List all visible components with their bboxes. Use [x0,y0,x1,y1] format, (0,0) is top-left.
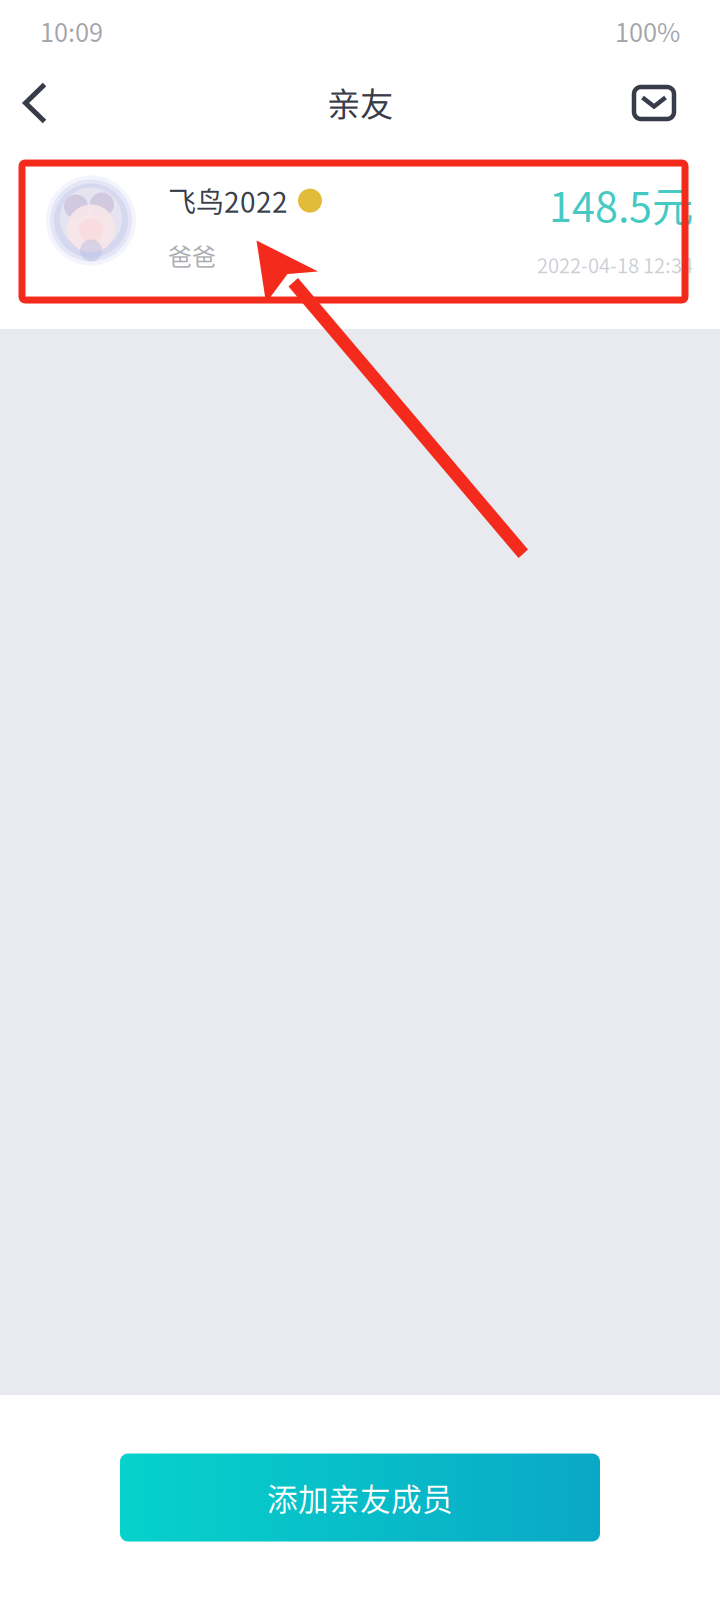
staticText: 10:09 [40,13,103,49]
button[interactable]: 添加亲友成员 [120,1453,600,1541]
staticText: 飞鸟2022 [168,180,288,221]
button[interactable]: 消息 [619,63,689,143]
button[interactable]: 返回 [0,63,70,143]
staticText: 148.5元 [549,174,693,234]
staticText: 添加亲友成员 [267,1475,453,1520]
staticText: 亲友 [327,78,393,126]
staticText: 2022-04-18 12:34 [537,250,693,279]
staticText: 爸爸 [168,238,216,273]
button[interactable]: 飞鸟2022 [0,152,720,289]
staticText: 100% [615,13,680,49]
